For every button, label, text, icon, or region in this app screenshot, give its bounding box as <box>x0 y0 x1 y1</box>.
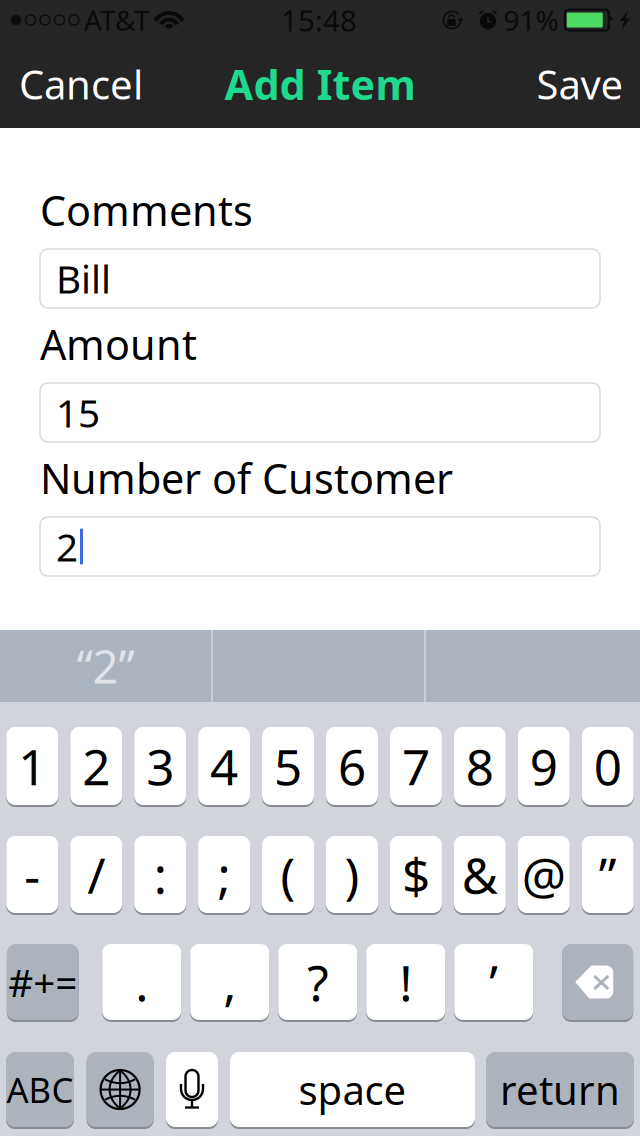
button[interactable]: #+= <box>7 944 79 1020</box>
staticText: $ <box>402 842 430 907</box>
staticText: space <box>298 1063 406 1116</box>
button[interactable]: ) <box>326 836 378 913</box>
staticText: / <box>87 842 105 907</box>
staticText: Comments <box>40 183 253 237</box>
staticText: 9 <box>530 733 558 799</box>
button[interactable]: : <box>134 836 186 913</box>
staticText: 6 <box>338 733 366 799</box>
button[interactable]: Delete <box>562 944 633 1020</box>
button[interactable]: ’ <box>454 944 533 1020</box>
staticText: Add Item <box>224 57 415 111</box>
button[interactable]: , <box>190 944 269 1020</box>
button[interactable]: ABC <box>6 1052 74 1127</box>
button[interactable]: Save <box>520 40 640 128</box>
button[interactable]: 0 <box>582 727 634 805</box>
staticText: Amount <box>40 317 197 371</box>
staticText: AT&T <box>84 1 150 39</box>
staticText: - <box>24 842 40 907</box>
button[interactable]: Dictation <box>166 1052 218 1127</box>
button[interactable]: 5 <box>262 727 314 805</box>
staticText: 5 <box>274 733 302 799</box>
staticText: 8 <box>466 733 494 799</box>
staticText: #+= <box>8 956 77 1008</box>
staticText: . <box>135 949 148 1015</box>
button[interactable]: 2 <box>70 727 122 805</box>
button[interactable]: ( <box>262 836 314 913</box>
staticText: @ <box>522 842 566 907</box>
staticText: 91% <box>503 1 558 39</box>
button[interactable]: return <box>486 1052 634 1127</box>
staticText: Save <box>536 57 623 110</box>
button[interactable]: 9 <box>518 727 570 805</box>
button[interactable]: 3 <box>134 727 186 805</box>
button[interactable]: ; <box>198 836 250 913</box>
button[interactable]: 7 <box>390 727 442 805</box>
button[interactable]: . <box>102 944 181 1020</box>
staticText: ) <box>344 842 359 907</box>
staticText: 1 <box>18 733 46 799</box>
button[interactable]: “2” <box>0 630 211 702</box>
staticText: ABC <box>6 1066 73 1112</box>
staticText: ’ <box>489 949 498 1015</box>
button[interactable]: 8 <box>454 727 506 805</box>
staticText: 0 <box>594 733 622 799</box>
button[interactable]: / <box>70 836 122 913</box>
staticText: 15:48 <box>281 0 357 39</box>
staticText: 7 <box>402 733 430 799</box>
staticText: ; <box>218 842 231 907</box>
button[interactable]: ! <box>366 944 445 1020</box>
staticText: & <box>462 842 498 907</box>
staticText: Number of Customer <box>40 451 453 505</box>
button[interactable]: space <box>230 1052 475 1127</box>
button[interactable]: 6 <box>326 727 378 805</box>
button[interactable]: 4 <box>198 727 250 805</box>
button[interactable]: & <box>454 836 506 913</box>
staticText: , <box>223 949 236 1015</box>
button[interactable]: @ <box>518 836 570 913</box>
button[interactable]: ” <box>582 836 634 913</box>
staticText: 4 <box>210 733 238 799</box>
button[interactable]: - <box>6 836 58 913</box>
staticText: “2” <box>76 636 134 696</box>
staticText: ? <box>307 949 328 1015</box>
staticText: Bill <box>56 253 111 304</box>
staticText: return <box>500 1063 620 1116</box>
staticText: : <box>154 842 167 907</box>
button[interactable]: 1 <box>6 727 58 805</box>
staticText: 2 <box>82 733 110 799</box>
staticText: 2 <box>56 521 78 572</box>
button[interactable]: ? <box>278 944 357 1020</box>
button[interactable]: $ <box>390 836 442 913</box>
staticText: Cancel <box>19 57 143 110</box>
staticText: ” <box>599 842 617 907</box>
button[interactable]: Cancel <box>11 40 151 128</box>
staticText: ! <box>399 949 412 1015</box>
button[interactable]: Next keyboard <box>87 1052 154 1127</box>
staticText: 15 <box>56 387 100 438</box>
staticText: 3 <box>146 733 174 799</box>
staticText: ( <box>280 842 295 907</box>
